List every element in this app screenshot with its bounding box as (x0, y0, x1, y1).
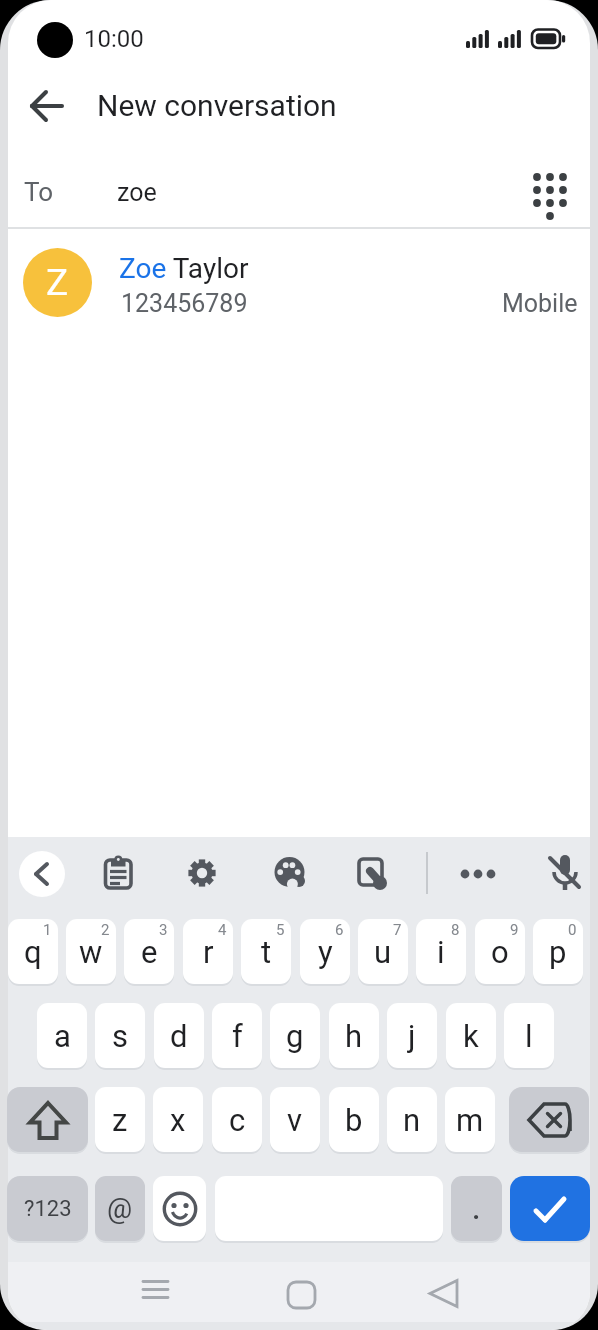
button[interactable]: q (8, 919, 58, 984)
button[interactable]: l (504, 1003, 554, 1068)
button[interactable]: h (329, 1003, 379, 1068)
staticText: Mobile (502, 289, 578, 318)
staticText: c (229, 1102, 246, 1138)
button[interactable]: u (358, 919, 408, 984)
button[interactable] (22, 81, 72, 131)
button[interactable]: ?123 (7, 1176, 88, 1241)
button[interactable] (538, 849, 584, 895)
button[interactable]: k (446, 1003, 496, 1068)
button[interactable]: a (37, 1003, 87, 1068)
staticText: x (170, 1102, 186, 1138)
button[interactable]: b (329, 1087, 379, 1152)
button[interactable]: e (124, 919, 174, 984)
staticText: w (79, 934, 103, 970)
staticText: . (472, 1191, 481, 1226)
button[interactable]: w (66, 919, 116, 984)
staticText: q (24, 934, 42, 970)
staticText: o (491, 934, 509, 970)
button[interactable] (8, 158, 590, 227)
staticText: f (232, 1018, 243, 1054)
staticText: ?123 (24, 1196, 72, 1222)
staticText: 6 (335, 921, 344, 939)
staticText: 8 (451, 921, 460, 939)
staticText: s (112, 1018, 128, 1054)
staticText: v (287, 1102, 303, 1138)
staticText: 7 (393, 921, 402, 939)
staticText: p (549, 934, 567, 970)
button[interactable]: d (154, 1003, 204, 1068)
button[interactable] (416, 1271, 464, 1319)
staticText: z (112, 1102, 128, 1138)
staticText: y (318, 934, 333, 970)
staticText: j (408, 1018, 416, 1054)
staticText: g (286, 1018, 304, 1054)
staticText: e (141, 934, 158, 970)
staticText: b (345, 1102, 363, 1138)
staticText: d (170, 1018, 188, 1054)
button[interactable]: @ (95, 1176, 145, 1241)
staticText: n (403, 1102, 421, 1138)
button[interactable] (134, 1271, 182, 1319)
button[interactable]: r (183, 919, 233, 984)
staticText: 1 (43, 921, 52, 939)
button[interactable]: s (95, 1003, 145, 1068)
button[interactable]: g (270, 1003, 320, 1068)
staticText: 3 (159, 921, 168, 939)
staticText: 9 (510, 921, 519, 939)
button[interactable]: f (212, 1003, 262, 1068)
button[interactable] (96, 851, 140, 895)
staticText: Z (46, 261, 69, 304)
staticText: r (203, 934, 214, 970)
button[interactable]: t (241, 919, 291, 984)
button[interactable]: m (445, 1087, 495, 1152)
button[interactable] (339, 851, 391, 903)
staticText: zoe (117, 178, 157, 207)
button[interactable]: y (300, 919, 350, 984)
button[interactable] (7, 1087, 88, 1152)
button[interactable]: j (387, 1003, 437, 1068)
staticText: u (374, 934, 392, 970)
staticText: New conversation (97, 88, 337, 123)
staticText: 0 (568, 921, 577, 939)
staticText: h (345, 1018, 363, 1054)
staticText: 10:00 (84, 25, 144, 53)
staticText: @ (107, 1192, 133, 1225)
button[interactable] (265, 851, 309, 895)
button[interactable] (526, 168, 574, 216)
staticText: 5 (276, 921, 285, 939)
button[interactable] (509, 1087, 589, 1152)
staticText: 4 (218, 921, 227, 939)
button[interactable] (153, 1176, 206, 1241)
button[interactable]: n (387, 1087, 437, 1152)
staticText: i (437, 934, 445, 970)
staticText: l (525, 1018, 533, 1054)
staticText: 123456789 (121, 289, 248, 318)
staticText: Zoe Taylor (119, 252, 249, 285)
button[interactable] (8, 240, 590, 330)
button[interactable]: i (416, 919, 466, 984)
button[interactable]: x (153, 1087, 203, 1152)
staticText: 2 (101, 921, 110, 939)
button[interactable] (19, 851, 65, 897)
staticText: m (456, 1102, 484, 1138)
staticText: a (54, 1018, 71, 1054)
button[interactable]: p (533, 919, 583, 984)
button[interactable]: v (270, 1087, 320, 1152)
button[interactable] (456, 851, 500, 895)
staticText: t (261, 934, 272, 970)
button[interactable]: c (212, 1087, 262, 1152)
button[interactable]: . (451, 1176, 502, 1241)
button[interactable] (274, 1271, 322, 1319)
staticText: k (463, 1018, 479, 1054)
button[interactable]: z (95, 1087, 145, 1152)
button[interactable]: o (475, 919, 525, 984)
button[interactable] (510, 1176, 590, 1241)
staticText: To (24, 177, 54, 207)
button[interactable] (180, 851, 224, 895)
